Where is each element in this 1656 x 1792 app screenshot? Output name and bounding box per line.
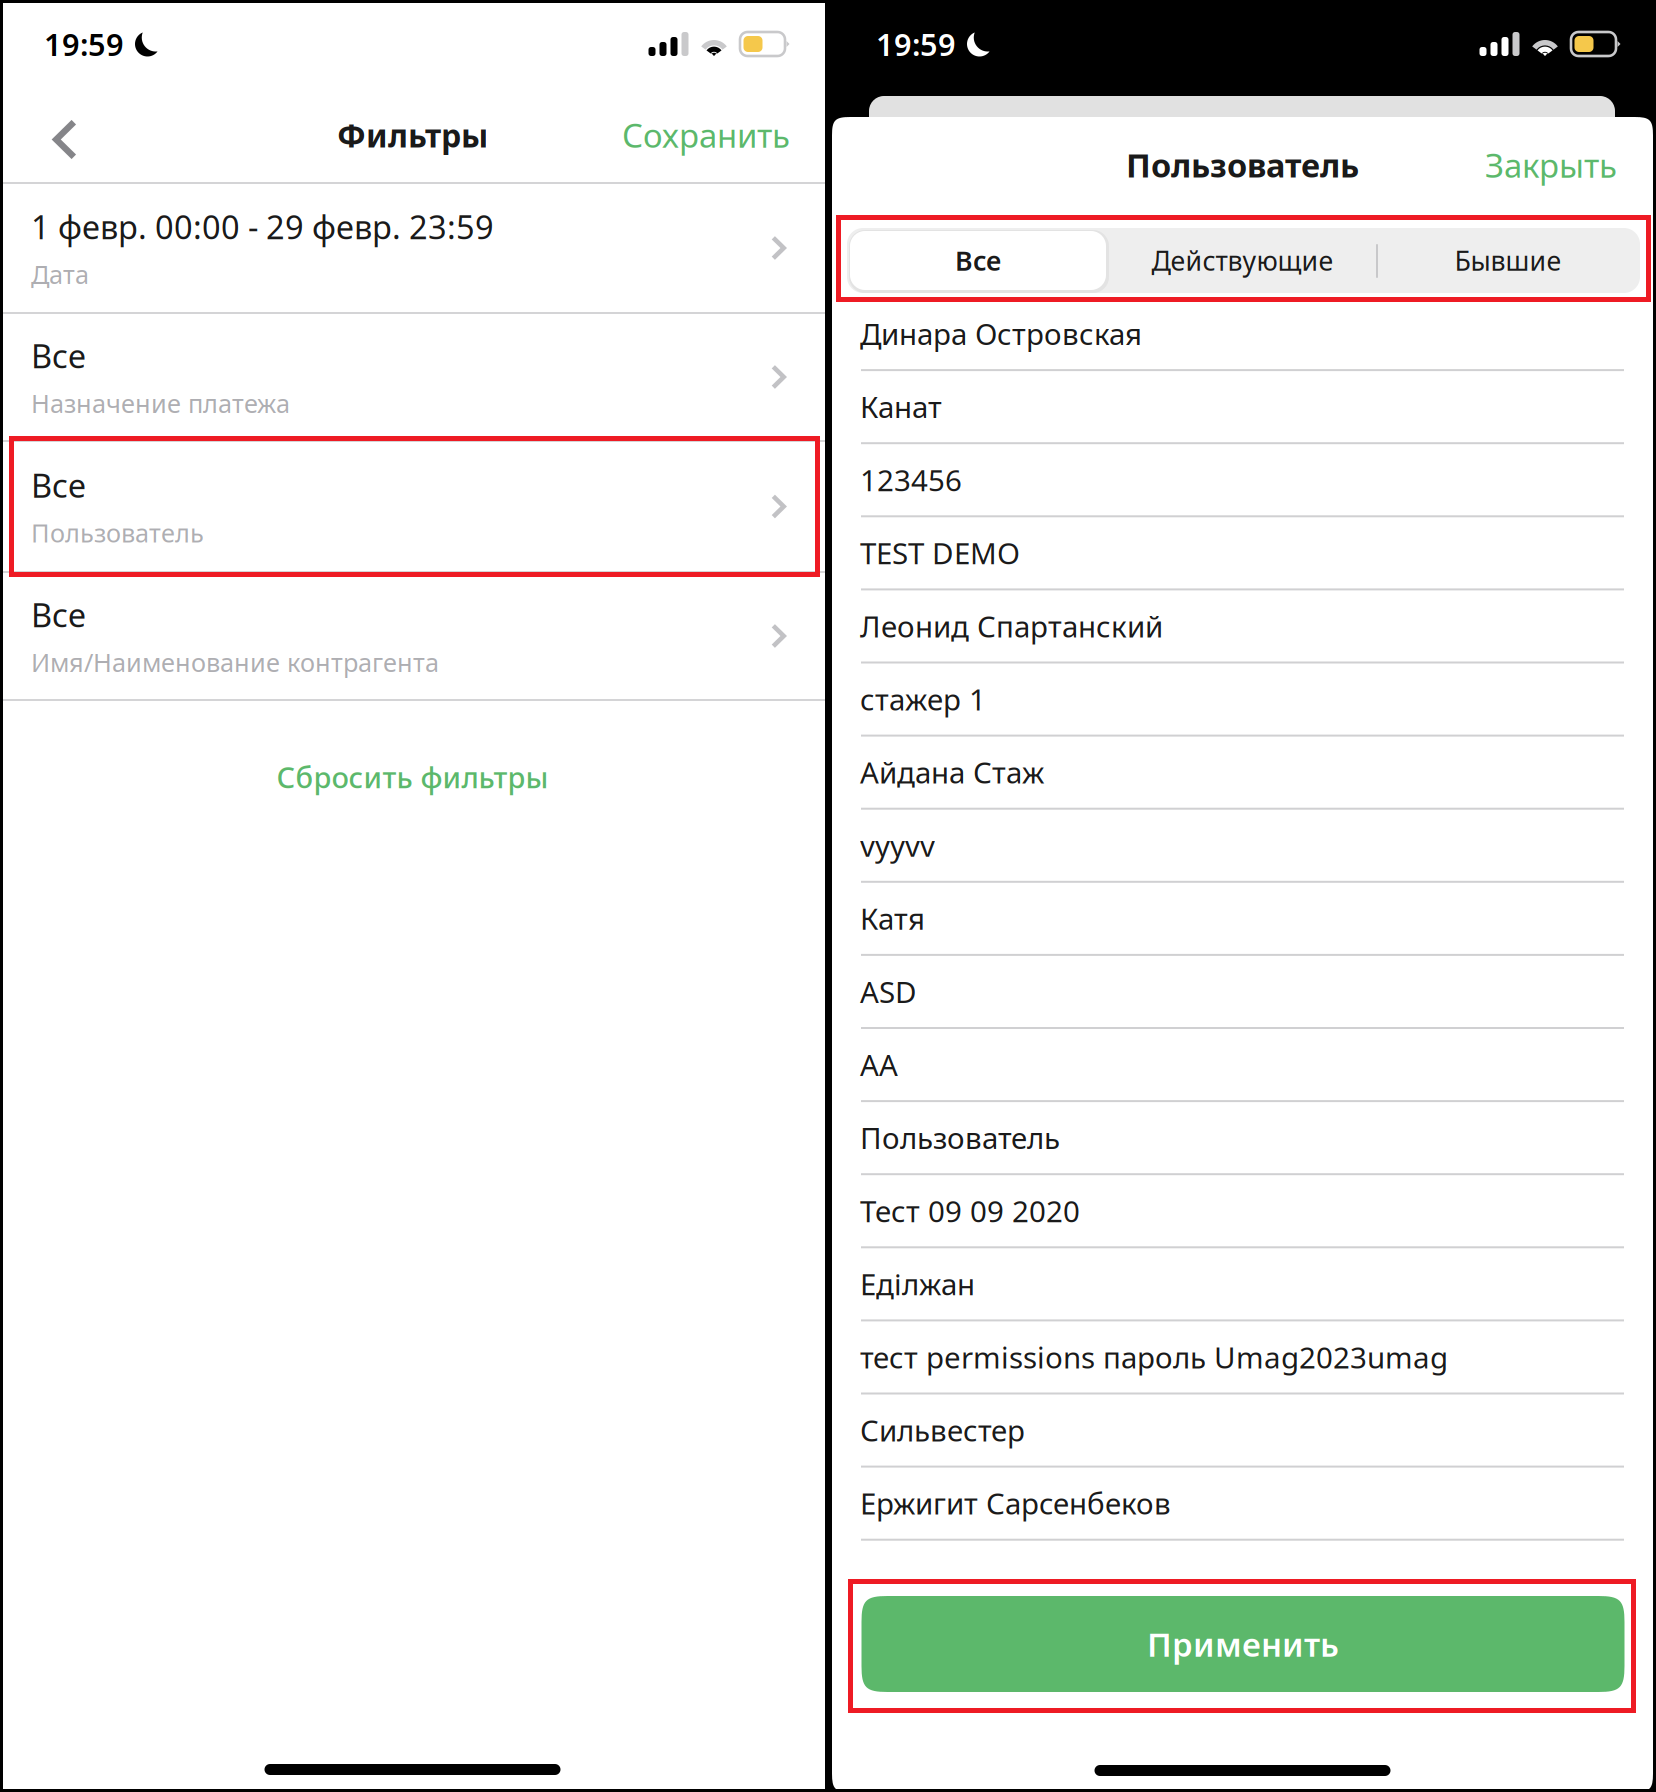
staticText: Закрыть (1485, 143, 1617, 187)
button[interactable]: Сильвестер (832, 1394, 1653, 1468)
button[interactable]: Назад (0, 88, 105, 182)
staticText: Все (31, 334, 86, 378)
staticText: Канат (860, 387, 942, 427)
staticText: тест permissions пароль Umag2023umag (860, 1337, 1448, 1377)
button[interactable]: Динара Островская (832, 298, 1653, 371)
staticText: vyyvv (860, 825, 935, 865)
staticText: Сильвестер (860, 1410, 1025, 1450)
button[interactable]: AA (832, 1029, 1653, 1102)
staticText: 123456 (860, 460, 962, 500)
staticText: Все (955, 242, 1001, 279)
button[interactable]: Все (0, 442, 825, 571)
staticText: Еділжан (860, 1264, 975, 1304)
button[interactable]: Канат (832, 371, 1653, 444)
button[interactable]: Леонид Спартанский (832, 590, 1653, 663)
staticText: Катя (860, 898, 925, 938)
button[interactable]: Еділжан (832, 1248, 1653, 1321)
button[interactable]: Бывшие (1376, 228, 1640, 293)
staticText: стажер 1 (860, 679, 986, 719)
staticText: Ержигит Сарсенбеков (860, 1483, 1171, 1523)
staticText: 19:59 (876, 23, 956, 65)
staticText: Фильтры (337, 113, 488, 157)
button[interactable]: TEST DEMO (832, 517, 1653, 590)
button[interactable]: Все (0, 314, 825, 440)
button[interactable]: стажер 1 (832, 663, 1653, 737)
staticText: Пользователь (1126, 143, 1359, 187)
staticText: Леонид Спартанский (860, 606, 1163, 646)
button[interactable]: Все (0, 573, 825, 699)
button[interactable]: Пользователь (832, 1102, 1653, 1175)
button[interactable]: 123456 (832, 444, 1653, 517)
button[interactable]: Тест 09 09 2020 (832, 1175, 1653, 1248)
staticText: Все (31, 593, 86, 637)
button[interactable]: тест permissions пароль Umag2023umag (832, 1321, 1653, 1394)
staticText: Все (31, 463, 86, 507)
staticText: Сбросить фильтры (276, 757, 548, 797)
staticText: Тест 09 09 2020 (860, 1191, 1080, 1231)
button[interactable]: Ержигит Сарсенбеков (832, 1468, 1653, 1541)
staticText: Айдана Стаж (860, 752, 1044, 792)
staticText: Действующие (1151, 242, 1333, 279)
button[interactable]: Все (847, 228, 1109, 293)
staticText: Бывшие (1454, 242, 1561, 279)
staticText: Сохранить (622, 113, 790, 157)
button[interactable]: ASD (832, 956, 1653, 1029)
button[interactable]: Сбросить фильтры (0, 747, 825, 807)
button[interactable]: Действующие (1109, 228, 1376, 293)
staticText: Назначение платежа (31, 386, 290, 420)
staticText: Имя/Наименование контрагента (31, 645, 439, 679)
staticText: Применить (1147, 1622, 1339, 1666)
button[interactable]: Сохранить (592, 88, 825, 182)
button[interactable]: Закрыть (1455, 117, 1653, 213)
staticText: 1 февр. 00:00 - 29 февр. 23:59 (31, 205, 494, 249)
button[interactable]: 1 февр. 00:00 - 29 февр. 23:59 (0, 184, 825, 312)
staticText: AA (860, 1044, 898, 1085)
button[interactable]: Катя (832, 883, 1653, 956)
staticText: Динара Островская (860, 313, 1142, 354)
button[interactable]: Айдана Стаж (832, 737, 1653, 810)
button[interactable]: vyyvv (832, 810, 1653, 883)
staticText: ASD (860, 971, 917, 1011)
staticText: Дата (31, 257, 89, 291)
staticText: 19:59 (44, 23, 124, 65)
staticText: TEST DEMO (860, 533, 1020, 573)
staticText: Пользователь (31, 515, 204, 550)
staticText: Пользователь (860, 1118, 1060, 1158)
button[interactable]: Применить (861, 1596, 1624, 1692)
